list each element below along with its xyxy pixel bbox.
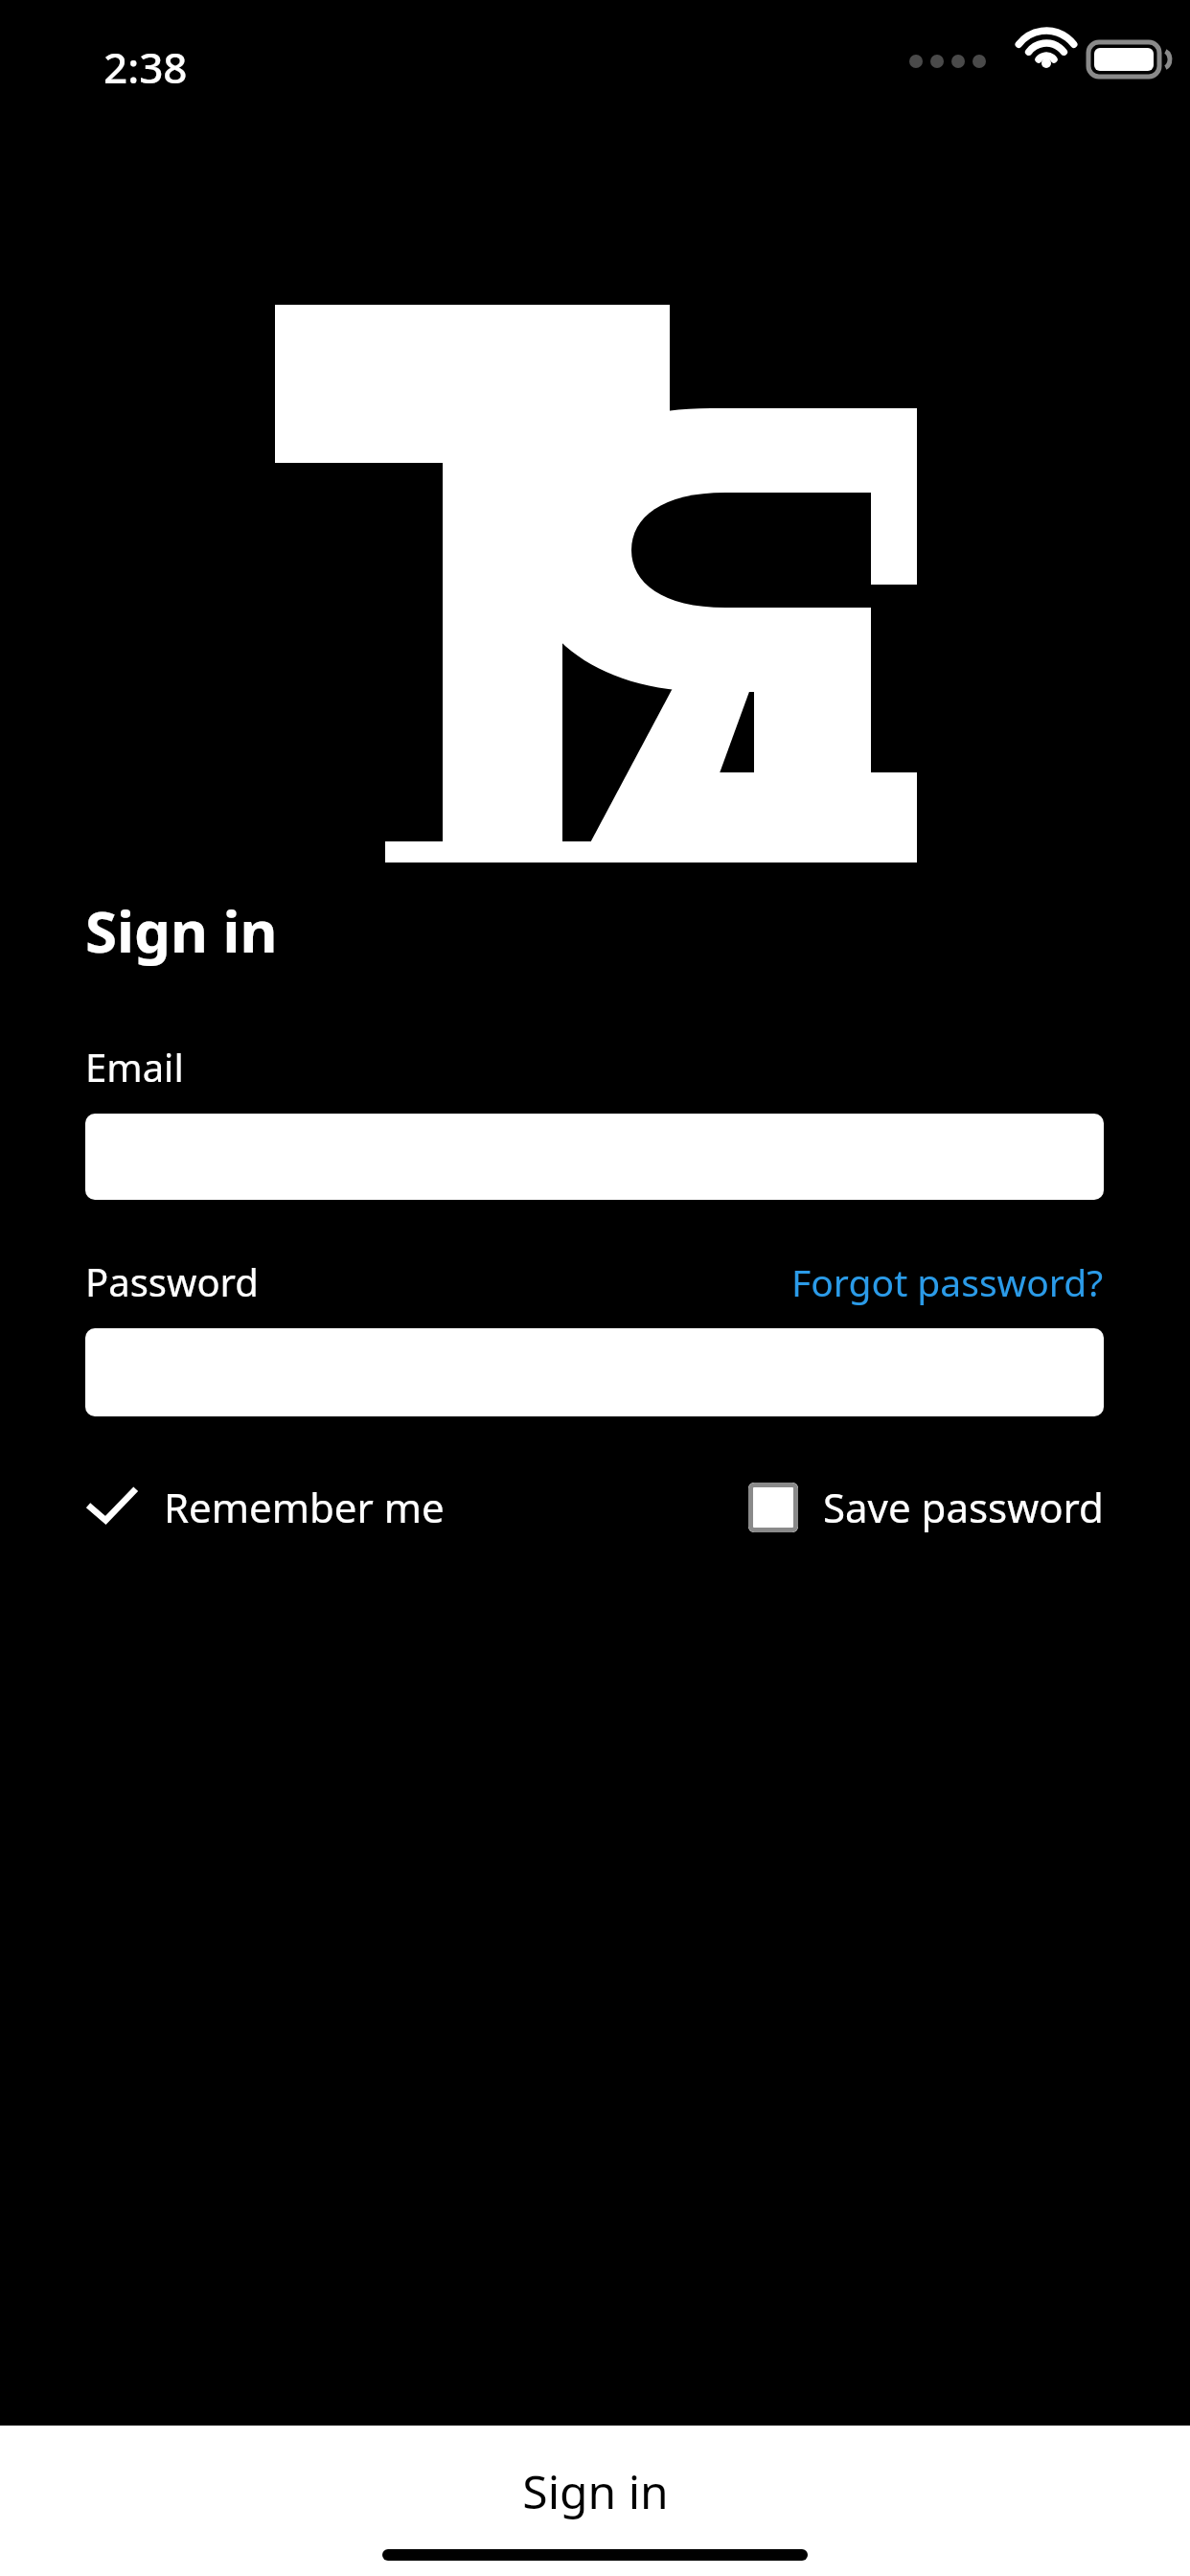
button[interactable]: Save password xyxy=(748,1480,1104,1534)
button[interactable]: Password input xyxy=(85,1328,1104,1416)
staticText: Sign in xyxy=(85,891,278,970)
staticText: Password xyxy=(85,1255,259,1307)
button[interactable]: Forgot password? xyxy=(791,1256,1104,1307)
staticText: Email xyxy=(85,1041,184,1092)
staticText: Sign in xyxy=(522,2460,669,2522)
staticText: Remember me xyxy=(164,1480,445,1534)
button[interactable]: Sign in xyxy=(0,2426,1190,2576)
button[interactable]: Email input xyxy=(85,1114,1104,1200)
staticText: Forgot password? xyxy=(791,1256,1104,1307)
staticText: 2:38 xyxy=(103,38,188,96)
button[interactable]: Remember me xyxy=(85,1480,445,1534)
staticText: Save password xyxy=(823,1480,1104,1534)
